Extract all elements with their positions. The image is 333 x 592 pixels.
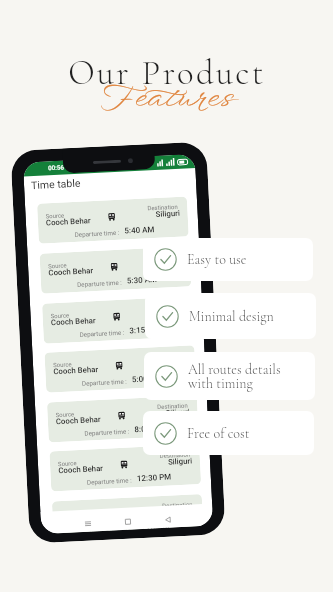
- staticText: Departure time :: [84, 427, 130, 437]
- staticText: Source: [50, 311, 70, 319]
- staticText: Cooch Behar: [56, 415, 101, 426]
- staticText: Our Product: [68, 52, 266, 94]
- staticText: Destination: [159, 450, 191, 459]
- staticText: 00:56: [48, 163, 64, 171]
- staticText: Cooch Behar: [61, 514, 106, 525]
- staticText: 5:30 AM: [127, 275, 158, 285]
- button[interactable]: Free of cost: [143, 411, 314, 455]
- staticText: 12:30 PM: [137, 472, 172, 483]
- button[interactable]: Source: [52, 494, 203, 533]
- staticText: 5:00 PM: [132, 374, 162, 384]
- staticText: Features: [103, 77, 231, 122]
- staticText: Source: [58, 459, 77, 467]
- staticText: Destination: [150, 253, 181, 261]
- staticText: 3:15 PM: [129, 325, 160, 335]
- button[interactable]: Back: [161, 512, 175, 527]
- staticText: Free of cost: [187, 425, 250, 442]
- staticText: Easy to use: [187, 251, 247, 268]
- staticText: Siliguri: [165, 407, 191, 418]
- staticText: Source: [53, 360, 72, 368]
- staticText: Cooch Behar: [58, 464, 103, 475]
- button[interactable]: Easy to use: [143, 238, 313, 281]
- staticText: Siliguri: [168, 456, 193, 467]
- staticText: Departure time :: [79, 329, 125, 338]
- staticText: 5:40 AM: [124, 225, 156, 235]
- staticText: Cooch Behar: [51, 316, 96, 327]
- button[interactable]: All routes details with timing: [144, 352, 315, 400]
- staticText: Departure time :: [74, 229, 120, 238]
- staticText: Destination: [162, 500, 193, 509]
- button[interactable]: Source: [39, 246, 191, 294]
- staticText: Source: [45, 211, 65, 219]
- staticText: Minimal design: [189, 308, 274, 325]
- staticText: Departure time :: [89, 526, 134, 532]
- staticText: Time table: [31, 177, 81, 191]
- button[interactable]: Home: [121, 514, 135, 529]
- staticText: 8:00 PM: [134, 424, 165, 434]
- staticText: Source: [55, 410, 75, 418]
- staticText: Source: [60, 509, 80, 517]
- staticText: All routes details with timing: [188, 361, 281, 392]
- staticText: 6:20 AM: [139, 523, 170, 529]
- staticText: Siliguri: [158, 259, 183, 269]
- staticText: Destination: [147, 203, 178, 211]
- staticText: Departure time :: [77, 279, 122, 288]
- button[interactable]: Source: [42, 296, 194, 344]
- staticText: Source: [48, 261, 67, 269]
- staticText: Siliguri: [155, 209, 181, 219]
- button[interactable]: Minimal design: [145, 293, 316, 339]
- staticText: Siliguri: [160, 309, 186, 319]
- staticText: Departure time :: [82, 378, 127, 387]
- staticText: Cooch Behar: [46, 216, 91, 227]
- staticText: Departure time :: [87, 476, 132, 486]
- button[interactable]: Source: [44, 345, 196, 393]
- staticText: Cooch Behar: [48, 266, 94, 277]
- button[interactable]: Source: [49, 444, 201, 491]
- button[interactable]: Source: [37, 196, 189, 244]
- staticText: Destination: [157, 402, 188, 410]
- staticText: Siliguri: [163, 357, 188, 368]
- button[interactable]: Source: [47, 395, 199, 442]
- staticText: Destination: [152, 303, 183, 311]
- staticText: Cooch Behar: [53, 365, 99, 376]
- button[interactable]: Recent apps: [81, 516, 95, 531]
